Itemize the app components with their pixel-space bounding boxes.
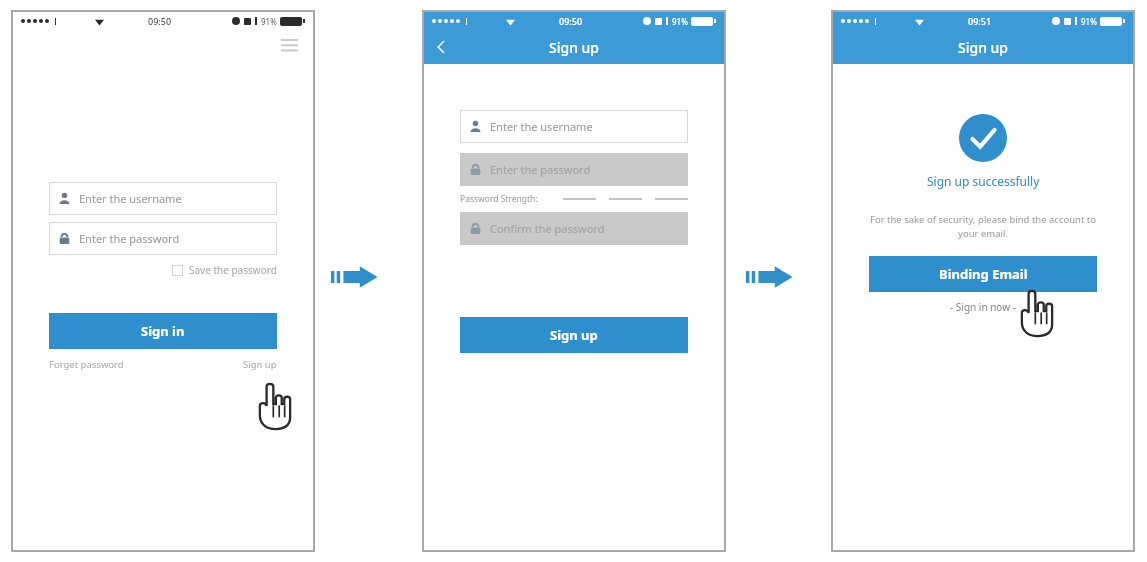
staticText: 09:50 bbox=[148, 15, 172, 27]
button[interactable]: Menu bbox=[277, 33, 301, 57]
button[interactable]: Confirm the password bbox=[469, 212, 679, 245]
staticText: For the sake of security, please bind th… bbox=[863, 213, 1103, 240]
button[interactable]: Sign up bbox=[243, 358, 277, 371]
staticText: Confirm the password bbox=[490, 221, 605, 236]
staticText: Sign up bbox=[550, 326, 598, 344]
staticText: Sign up bbox=[958, 38, 1009, 57]
staticText: Sign in bbox=[141, 322, 185, 340]
staticText: Enter the username bbox=[79, 191, 182, 206]
staticText: Forget password bbox=[49, 358, 124, 371]
staticText: - Sign in now - bbox=[950, 300, 1016, 314]
staticText: Save the password bbox=[189, 263, 277, 277]
staticText: Sign up bbox=[549, 38, 600, 57]
button[interactable]: Enter the password bbox=[469, 153, 679, 186]
staticText: Enter the password bbox=[490, 162, 591, 177]
button[interactable]: Enter the password bbox=[58, 222, 268, 255]
staticText: Sign up successfully bbox=[927, 173, 1040, 189]
button[interactable]: Enter the username bbox=[469, 110, 679, 143]
button[interactable]: Binding Email bbox=[869, 256, 1097, 292]
staticText: Sign up bbox=[243, 358, 277, 371]
button[interactable]: Enter the username bbox=[58, 182, 268, 215]
button[interactable]: Forget password bbox=[49, 358, 124, 371]
staticText: Binding Email bbox=[939, 265, 1028, 283]
staticText: Enter the password bbox=[79, 231, 180, 246]
button[interactable]: Back bbox=[424, 30, 458, 64]
staticText: 91% bbox=[261, 16, 277, 27]
staticText: 91% bbox=[672, 16, 688, 27]
button[interactable]: Sign up bbox=[460, 317, 688, 353]
staticText: 09:51 bbox=[968, 15, 992, 27]
staticText: Enter the username bbox=[490, 119, 593, 134]
staticText: 91% bbox=[1081, 16, 1097, 27]
button[interactable]: Save the password bbox=[49, 263, 277, 277]
button[interactable]: - Sign in now - bbox=[950, 300, 1016, 314]
staticText: 09:50 bbox=[559, 15, 583, 27]
button[interactable]: Sign in bbox=[49, 313, 277, 349]
staticText: Password Strength: bbox=[460, 193, 538, 205]
